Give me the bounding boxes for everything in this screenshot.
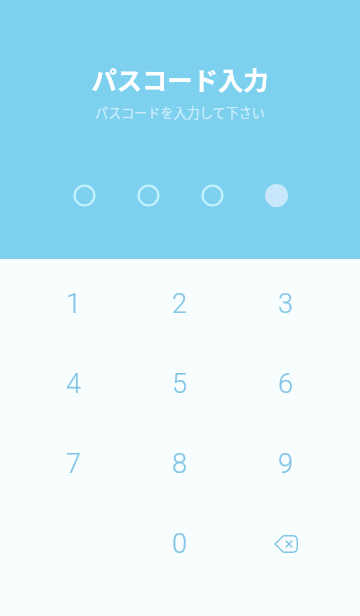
- staticText: 2: [172, 288, 188, 320]
- button[interactable]: 6: [233, 344, 339, 424]
- button[interactable]: 8: [127, 424, 233, 504]
- staticText: 3: [278, 288, 294, 320]
- button[interactable]: 2: [127, 264, 233, 344]
- staticText: 6: [278, 368, 294, 400]
- staticText: 0: [172, 528, 188, 560]
- button[interactable]: 5: [127, 344, 233, 424]
- staticText: 7: [66, 448, 82, 480]
- button[interactable]: 7: [21, 424, 127, 504]
- button[interactable]: 0: [127, 504, 233, 584]
- staticText: 5: [172, 368, 188, 400]
- button[interactable]: 9: [233, 424, 339, 504]
- staticText: 8: [172, 448, 188, 480]
- button[interactable]: 1: [21, 264, 127, 344]
- staticText: パスコードを入力して下さい: [95, 103, 265, 122]
- staticText: 1: [66, 288, 82, 320]
- button[interactable]: 4: [21, 344, 127, 424]
- staticText: パスコード入力: [91, 61, 269, 98]
- button[interactable]: 3: [233, 264, 339, 344]
- staticText: 9: [278, 448, 294, 480]
- staticText: 4: [66, 368, 82, 400]
- button[interactable]: Delete: [233, 504, 339, 584]
